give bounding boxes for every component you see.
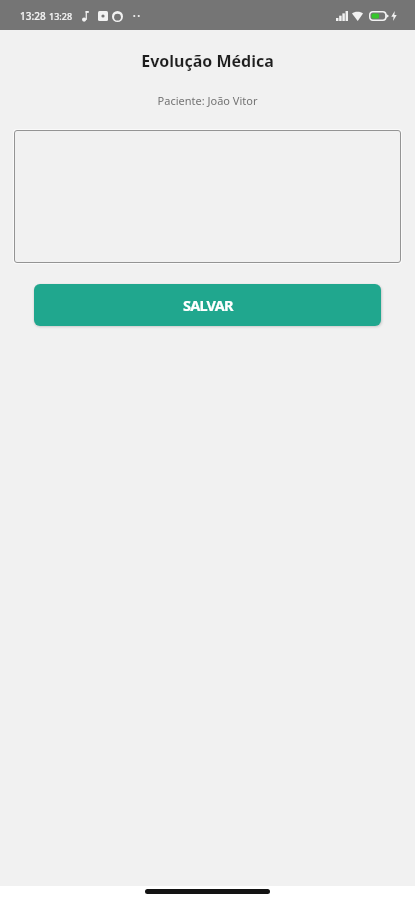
other: Notificação (98, 11, 108, 21)
other: Mais notificações (132, 11, 141, 21)
button[interactable]: Campo de evolução (13, 129, 402, 264)
staticText: Evolução Médica (0, 50, 415, 72)
other: Notificação (112, 11, 123, 22)
other: Carregando (391, 11, 397, 21)
button[interactable]: SALVAR (34, 284, 381, 326)
staticText: SALVAR (183, 295, 233, 315)
staticText: 13:28 (20, 9, 46, 23)
staticText: 13:28 (49, 10, 73, 22)
staticText: Paciente: João Vitor (0, 93, 415, 108)
other: Wi-Fi (352, 11, 363, 21)
other: Bateria (369, 11, 389, 21)
other: Barra de gestos (145, 889, 270, 894)
other: Sinal (336, 11, 348, 21)
other: Música (82, 11, 89, 22)
